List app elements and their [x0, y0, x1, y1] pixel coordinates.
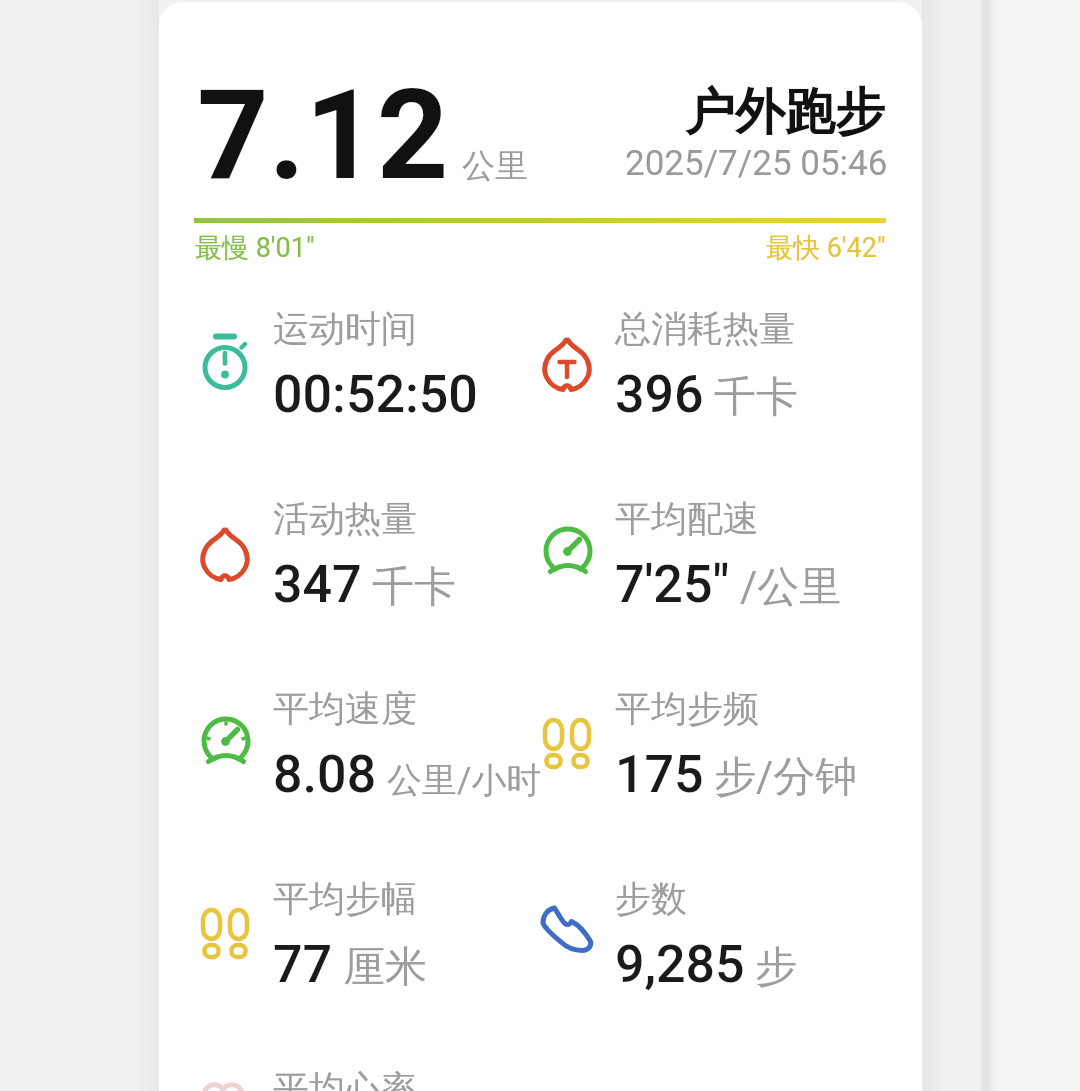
staticText: 347	[273, 554, 362, 615]
staticText: 396	[615, 364, 704, 425]
staticText: 活动热量	[273, 496, 417, 541]
staticText: 千卡	[372, 561, 456, 614]
staticText: 厘米	[343, 941, 427, 994]
button[interactable]: 运动时间	[199, 306, 545, 456]
button[interactable]: 平均步频	[541, 686, 887, 836]
staticText: 最慢 8'01"	[195, 231, 315, 265]
staticText: 总消耗热量	[615, 306, 795, 351]
staticText: /公里	[740, 561, 842, 614]
button[interactable]: 活动热量	[199, 496, 545, 646]
staticText: 7.12	[197, 62, 449, 208]
staticText: 公里/小时	[387, 758, 542, 802]
staticText: 2025/7/25 05:46	[625, 143, 888, 184]
staticText: 平均配速	[615, 496, 759, 541]
staticText: 公里	[462, 145, 528, 187]
staticText: 77	[273, 934, 333, 995]
staticText: 最快 6'42"	[766, 231, 886, 265]
button[interactable]: 平均配速	[541, 496, 887, 646]
staticText: 7'25"	[615, 554, 730, 615]
staticText: 9,285	[615, 934, 745, 995]
staticText: 步	[755, 941, 797, 994]
staticText: 平均步频	[615, 686, 759, 731]
button[interactable]: 步数	[541, 876, 887, 1026]
button[interactable]: 平均步幅	[199, 876, 545, 1026]
button[interactable]: 平均速度	[199, 686, 545, 836]
button[interactable]: 7.12	[197, 62, 528, 208]
staticText: 运动时间	[273, 306, 417, 351]
button[interactable]: 户外跑步	[685, 81, 885, 144]
staticText: 8.08	[273, 744, 377, 805]
staticText: 平均心率	[273, 1066, 417, 1091]
staticText: 平均步幅	[273, 876, 417, 921]
staticText: 平均速度	[273, 686, 417, 731]
staticText: 步/分钟	[714, 751, 858, 804]
staticText: 步数	[615, 876, 687, 921]
staticText: 千卡	[714, 371, 798, 424]
button[interactable]: 总消耗热量	[541, 306, 887, 456]
staticText: 175	[615, 744, 704, 805]
staticText: 00:52:50	[273, 364, 478, 425]
